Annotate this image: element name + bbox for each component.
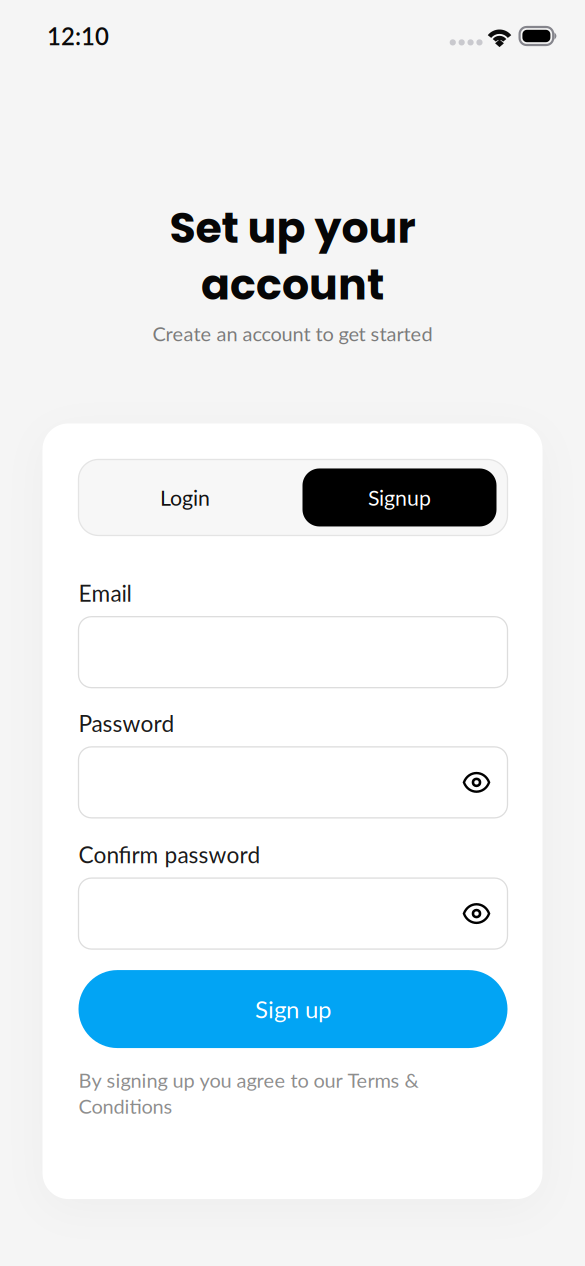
button[interactable]: Password xyxy=(78,747,507,818)
staticText: 12:10 xyxy=(47,22,109,50)
button[interactable]: Show Password xyxy=(462,747,507,817)
button[interactable]: Signup xyxy=(302,468,496,526)
staticText: Set up your xyxy=(169,198,415,258)
button[interactable]: Email xyxy=(78,617,507,688)
staticText: Password xyxy=(78,710,174,737)
staticText: By signing up you agree to our Terms & C… xyxy=(78,1068,418,1118)
button[interactable]: Show Confirm password xyxy=(462,879,507,949)
button[interactable]: Login xyxy=(78,460,291,534)
button[interactable]: Confirm password xyxy=(78,878,507,949)
staticText: Login xyxy=(160,485,210,510)
staticText: Create an account to get started xyxy=(152,321,432,345)
button[interactable]: Sign up xyxy=(78,970,507,1048)
staticText: Sign up xyxy=(255,995,331,1023)
staticText: account xyxy=(201,255,384,314)
staticText: Signup xyxy=(368,485,431,510)
staticText: Email xyxy=(78,579,131,607)
staticText: Confirm password xyxy=(78,841,260,868)
